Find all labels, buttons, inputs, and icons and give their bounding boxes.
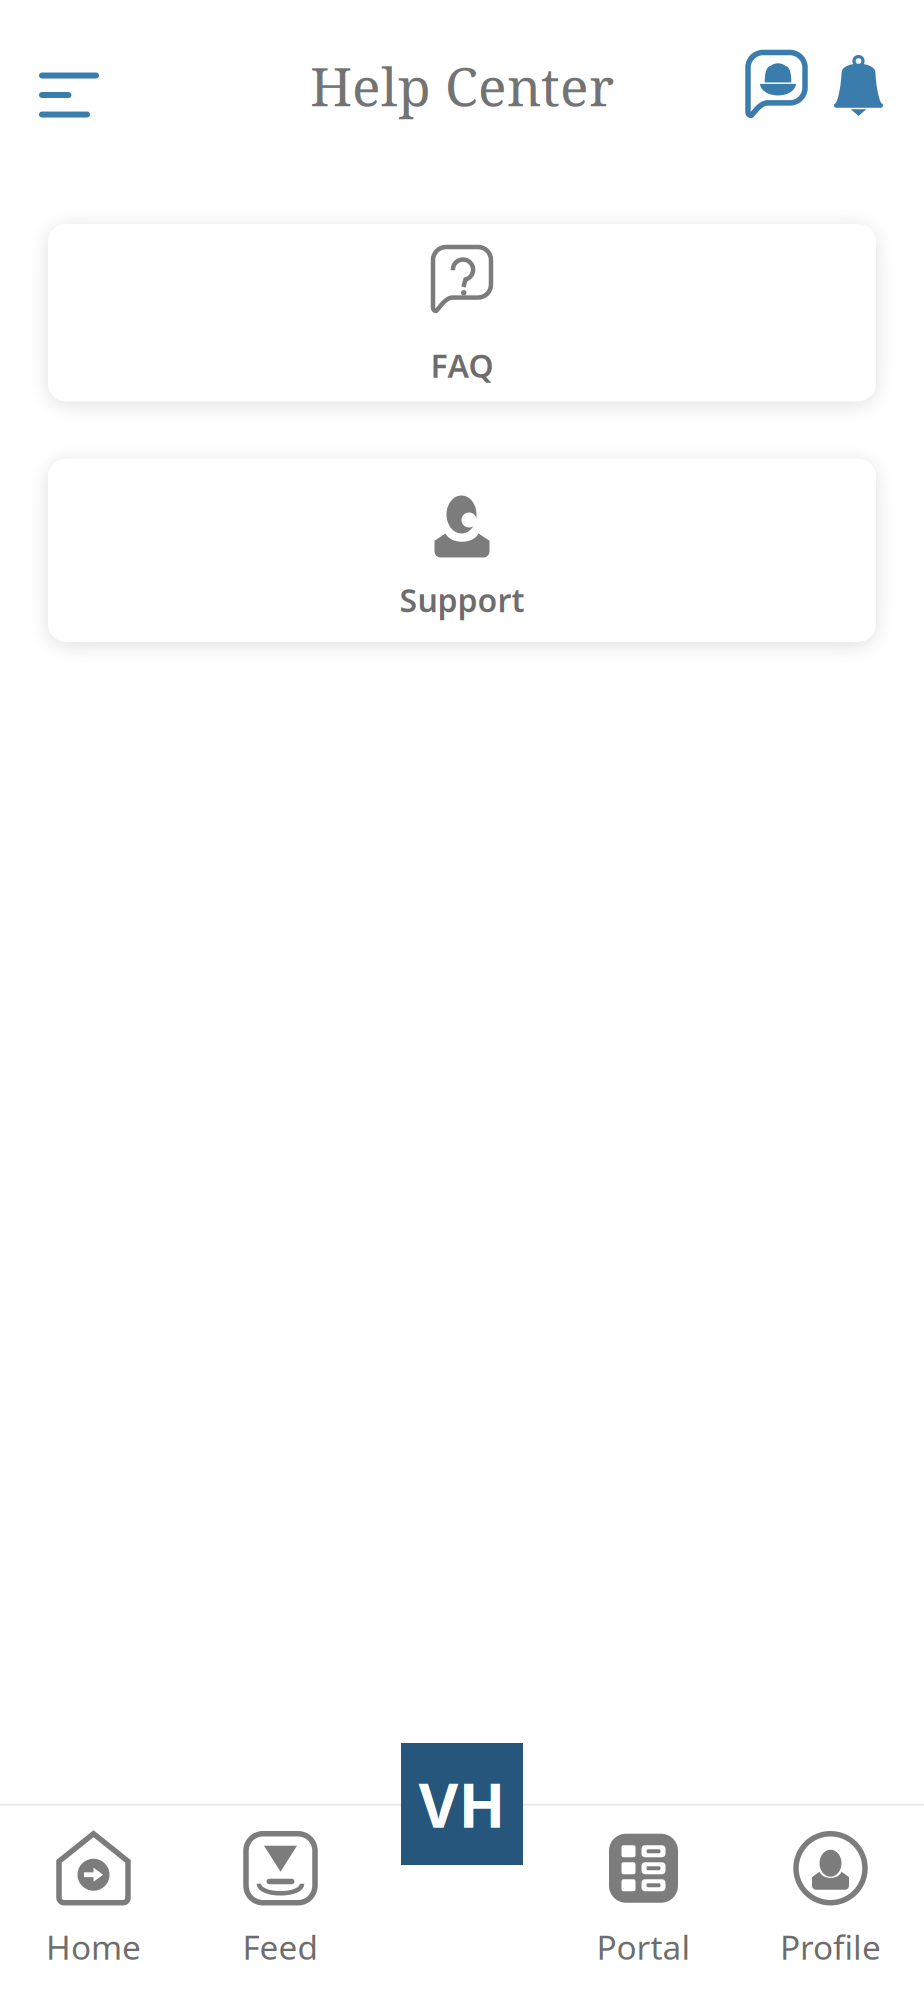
staticText: Portal bbox=[596, 1925, 690, 1969]
button[interactable]: Home bbox=[0, 1834, 187, 1969]
staticText: Help Center bbox=[310, 49, 614, 122]
staticText: FAQ bbox=[430, 344, 493, 386]
staticText: Feed bbox=[242, 1925, 318, 1969]
button[interactable]: Profile bbox=[737, 1834, 924, 1969]
button[interactable]: Support bbox=[48, 458, 876, 642]
button[interactable]: FAQ bbox=[48, 224, 876, 401]
button[interactable]: Messages bbox=[738, 29, 828, 150]
button[interactable]: Feed bbox=[187, 1834, 374, 1969]
staticText: VH bbox=[418, 1763, 505, 1845]
button[interactable]: Portal bbox=[550, 1834, 737, 1969]
staticText: Home bbox=[46, 1925, 141, 1969]
button[interactable]: Notifications bbox=[828, 30, 924, 150]
button[interactable]: Menu bbox=[0, 32, 126, 147]
button[interactable]: VH Home bbox=[401, 1743, 523, 1865]
staticText: Support bbox=[399, 578, 524, 621]
staticText: Profile bbox=[780, 1925, 881, 1969]
